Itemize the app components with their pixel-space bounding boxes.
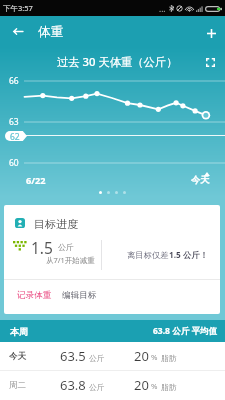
button[interactable]: Back bbox=[4, 16, 32, 47]
staticText: 从7/1开始减重 bbox=[46, 255, 95, 265]
staticText: 公斤 bbox=[89, 353, 105, 363]
staticText: 60 bbox=[9, 157, 19, 169]
staticText: % bbox=[151, 381, 158, 392]
staticText: ... bbox=[159, 3, 166, 14]
staticText: 62 bbox=[10, 131, 20, 141]
button[interactable]: Fullscreen bbox=[197, 49, 223, 75]
staticText: 过去 30 天体重（公斤） bbox=[57, 54, 178, 69]
button[interactable]: Add bbox=[197, 19, 225, 47]
staticText: 离目标仅差 bbox=[127, 250, 169, 260]
staticText: 编辑目标 bbox=[62, 290, 97, 301]
staticText: 脂肪 bbox=[161, 353, 177, 363]
staticText: 20 bbox=[134, 347, 149, 365]
staticText: 1.5 bbox=[31, 237, 53, 258]
staticText: 下午3:57 bbox=[3, 3, 33, 13]
button[interactable]: 记录体重 bbox=[11, 286, 58, 305]
staticText: 周二 bbox=[9, 380, 26, 391]
staticText: 66 bbox=[9, 75, 19, 87]
staticText: 脂肪 bbox=[161, 382, 177, 392]
staticText: 公斤 bbox=[89, 382, 105, 392]
staticText: 63 bbox=[9, 116, 19, 128]
button[interactable]: 今天 bbox=[0, 342, 225, 370]
staticText: 目标进度 bbox=[34, 217, 78, 231]
button[interactable]: 编辑目标 bbox=[56, 286, 103, 305]
staticText: 63.5 bbox=[60, 347, 86, 365]
staticText: 体重 bbox=[38, 24, 64, 40]
staticText: 20 bbox=[134, 376, 149, 394]
staticText: % bbox=[151, 352, 158, 363]
staticText: 1.5 公斤！ bbox=[169, 249, 208, 260]
staticText: 63.8 公斤 平均值 bbox=[153, 325, 217, 337]
staticText: 今天 bbox=[191, 174, 210, 186]
staticText: 公斤 bbox=[58, 242, 74, 252]
staticText: 63.8 bbox=[60, 376, 86, 394]
staticText: 记录体重 bbox=[17, 290, 52, 301]
button[interactable]: 周二 bbox=[0, 371, 225, 399]
staticText: 6/22 bbox=[26, 174, 46, 187]
staticText: 今天 bbox=[9, 351, 26, 362]
staticText: 本周 bbox=[10, 326, 28, 337]
